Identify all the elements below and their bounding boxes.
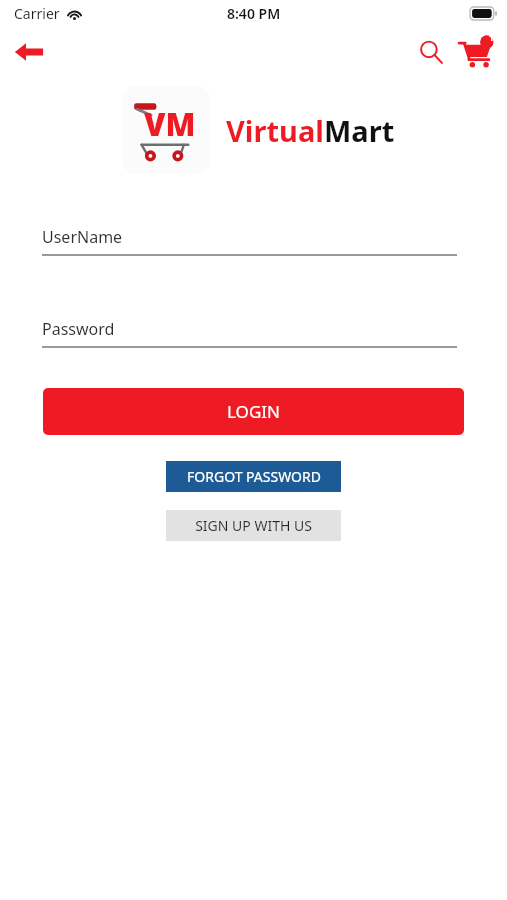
staticText: UserName — [42, 226, 123, 248]
staticText: Mart — [324, 111, 395, 150]
button[interactable]: Cart, 1 item — [453, 29, 499, 75]
staticText: Carrier — [14, 4, 60, 23]
button[interactable]: FORGOT PASSWORD — [166, 461, 341, 492]
staticText: FORGOT PASSWORD — [187, 467, 321, 486]
button[interactable]: LOGIN — [43, 388, 464, 435]
staticText: LOGIN — [227, 400, 280, 423]
staticText: VM — [144, 103, 196, 145]
button[interactable]: Back — [6, 29, 52, 75]
button[interactable]: Search — [409, 30, 453, 74]
button[interactable]: SIGN UP WITH US — [166, 510, 341, 541]
staticText: 8:40 PM — [227, 4, 281, 23]
staticText: Password — [42, 318, 115, 340]
staticText: 1 — [489, 32, 494, 43]
staticText: Virtual — [226, 111, 324, 150]
staticText: SIGN UP WITH US — [195, 516, 312, 535]
button[interactable]: UserName — [42, 226, 457, 256]
button[interactable]: Password — [42, 318, 457, 348]
